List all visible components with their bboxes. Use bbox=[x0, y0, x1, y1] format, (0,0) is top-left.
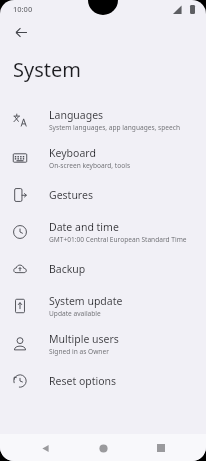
button[interactable]: Languages bbox=[0, 101, 206, 139]
staticText: Signed in as Owner bbox=[49, 347, 109, 356]
button[interactable]: Reset options bbox=[0, 363, 206, 399]
button[interactable]: Back bbox=[7, 18, 35, 46]
button[interactable]: Multiple users bbox=[0, 325, 206, 363]
staticText: On-screen keyboard, tools bbox=[49, 161, 131, 170]
staticText: Update available bbox=[49, 309, 101, 318]
staticText: System bbox=[13, 56, 81, 83]
staticText: System update bbox=[49, 294, 123, 308]
staticText: Languages bbox=[49, 108, 104, 122]
button[interactable]: Keyboard bbox=[0, 139, 206, 177]
staticText: Reset options bbox=[49, 374, 117, 388]
button[interactable]: Recent apps bbox=[148, 435, 174, 461]
staticText: Date and time bbox=[49, 220, 119, 234]
button[interactable]: Back bbox=[32, 435, 58, 461]
staticText: Multiple users bbox=[49, 332, 119, 346]
button[interactable]: Home bbox=[90, 435, 116, 461]
button[interactable]: System update bbox=[0, 287, 206, 325]
button[interactable]: Backup bbox=[0, 251, 206, 287]
button[interactable]: Gestures bbox=[0, 177, 206, 213]
staticText: 10:00 bbox=[13, 4, 33, 14]
staticText: System languages, app languages, speech bbox=[49, 123, 180, 132]
staticText: Keyboard bbox=[49, 146, 96, 160]
staticText: GMT+01:00 Central European Standard Time bbox=[49, 235, 187, 244]
button[interactable]: Date and time bbox=[0, 213, 206, 251]
staticText: Backup bbox=[49, 262, 86, 276]
staticText: Gestures bbox=[49, 188, 93, 202]
